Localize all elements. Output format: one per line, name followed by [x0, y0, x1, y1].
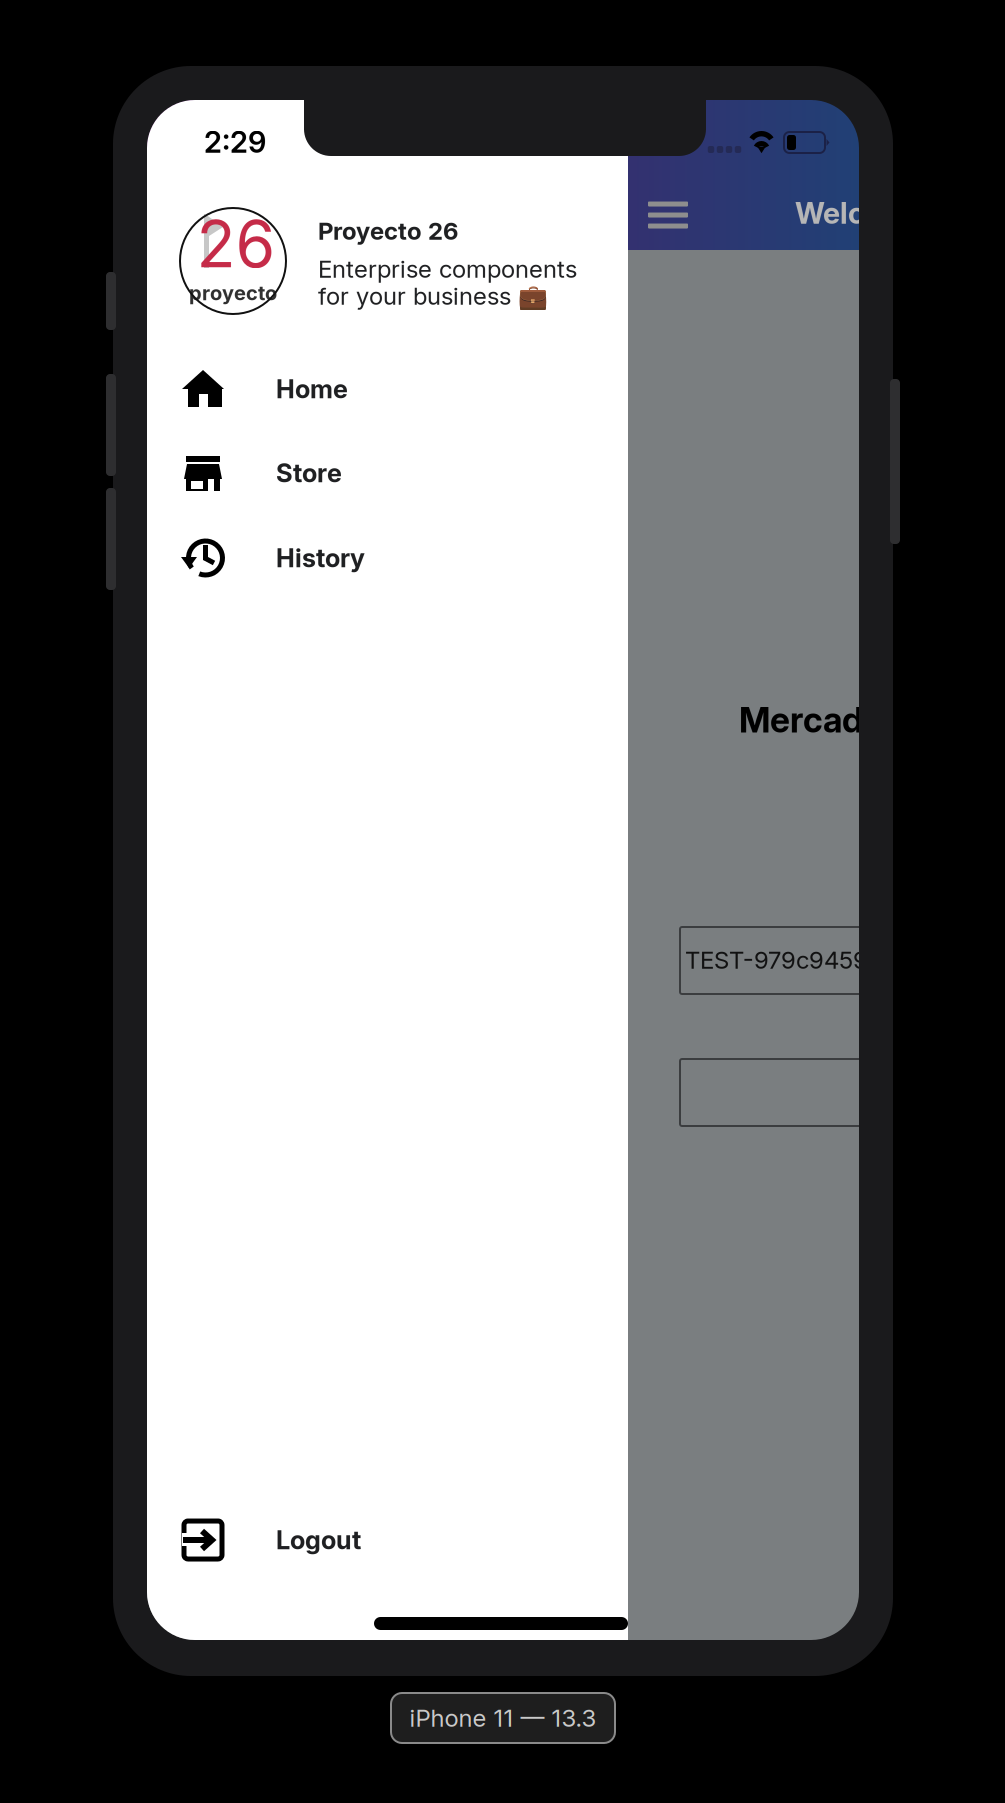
- button[interactable]: History: [147, 516, 628, 600]
- staticText: proyecto: [189, 281, 277, 305]
- button[interactable]: Logout: [147, 1498, 628, 1582]
- staticText: 2:29: [204, 124, 266, 160]
- staticText: Proyecto 26: [318, 216, 458, 245]
- staticText: Store: [276, 458, 342, 488]
- staticText: TEST-979c94593b: [685, 945, 897, 974]
- staticText: Home: [276, 374, 348, 404]
- button[interactable]: Open menu: [648, 197, 708, 233]
- button[interactable]: Store: [147, 431, 628, 515]
- staticText: History: [276, 543, 365, 573]
- staticText: 26: [196, 205, 275, 283]
- staticText: Enterprise components: [318, 254, 577, 283]
- staticText: Logout: [276, 1525, 361, 1555]
- staticText: Mercado Pago: [739, 699, 972, 741]
- staticText: for your business 💼: [318, 281, 548, 310]
- staticText: iPhone 11 — 13.3: [409, 1703, 596, 1732]
- button[interactable]: Home: [147, 347, 628, 431]
- staticText: Welcome: [795, 195, 926, 231]
